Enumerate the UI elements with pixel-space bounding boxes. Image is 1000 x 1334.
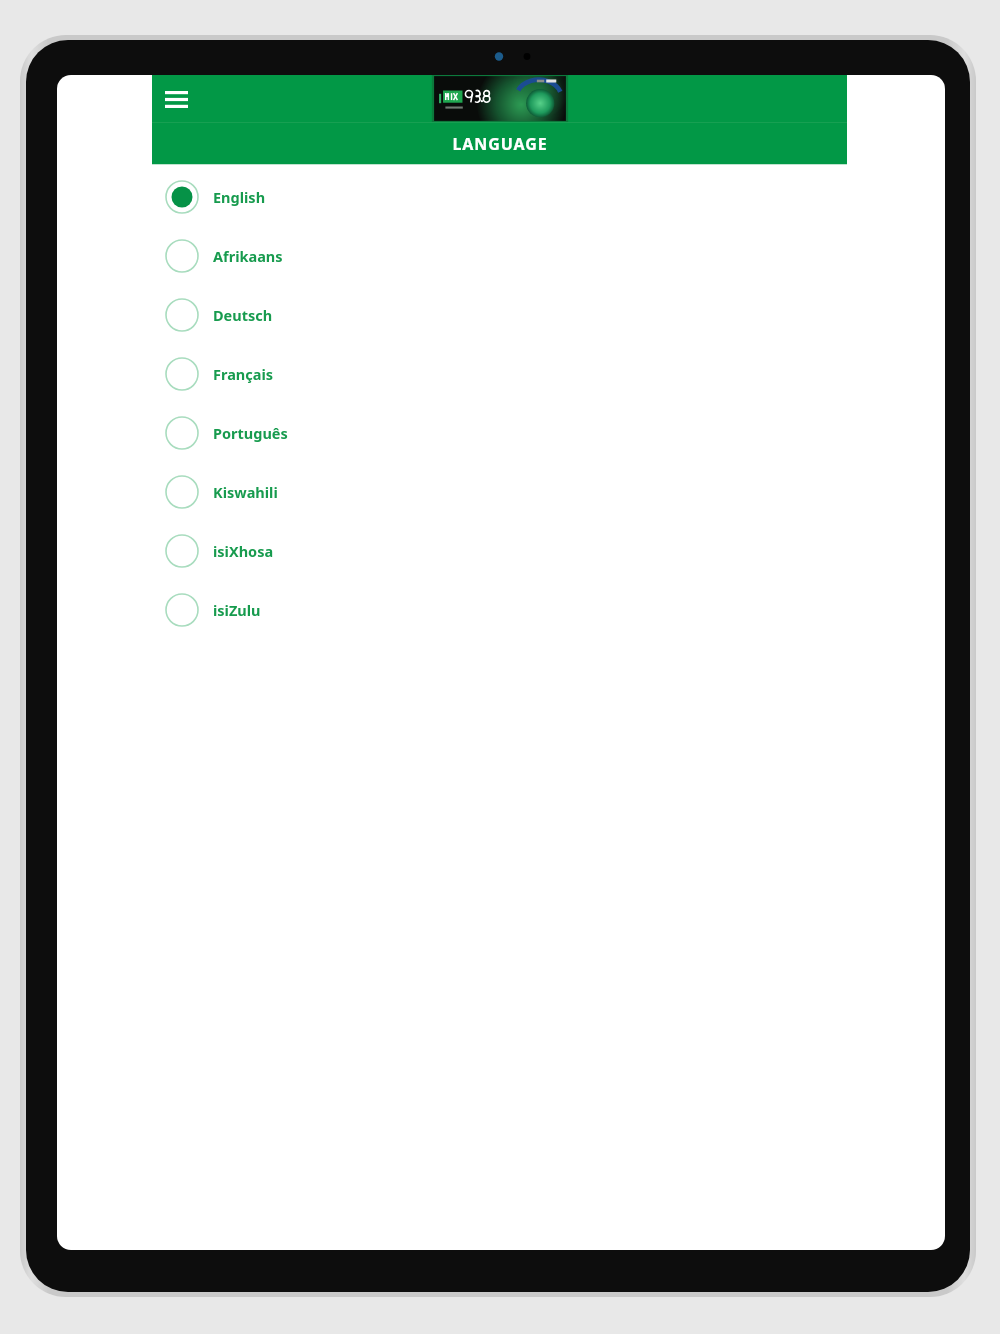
- button[interactable]: isiZulu: [152, 580, 847, 639]
- staticText: LANGUAGE: [452, 133, 548, 155]
- staticText: Português: [213, 423, 288, 443]
- button[interactable]: Português: [152, 403, 847, 462]
- button[interactable]: English: [152, 167, 847, 226]
- button[interactable]: Kiswahili: [152, 462, 847, 521]
- staticText: Français: [213, 364, 274, 384]
- button[interactable]: Mix 93.8 station logo: [433, 75, 567, 122]
- staticText: Kiswahili: [213, 482, 278, 502]
- staticText: Deutsch: [213, 305, 273, 325]
- staticText: isiXhosa: [213, 541, 274, 561]
- button[interactable]: Open navigation menu: [156, 79, 196, 119]
- button[interactable]: isiXhosa: [152, 521, 847, 580]
- staticText: English: [213, 187, 266, 207]
- staticText: isiZulu: [213, 600, 261, 620]
- button[interactable]: Deutsch: [152, 285, 847, 344]
- staticText: Afrikaans: [213, 246, 283, 266]
- button[interactable]: Français: [152, 344, 847, 403]
- button[interactable]: Afrikaans: [152, 226, 847, 285]
